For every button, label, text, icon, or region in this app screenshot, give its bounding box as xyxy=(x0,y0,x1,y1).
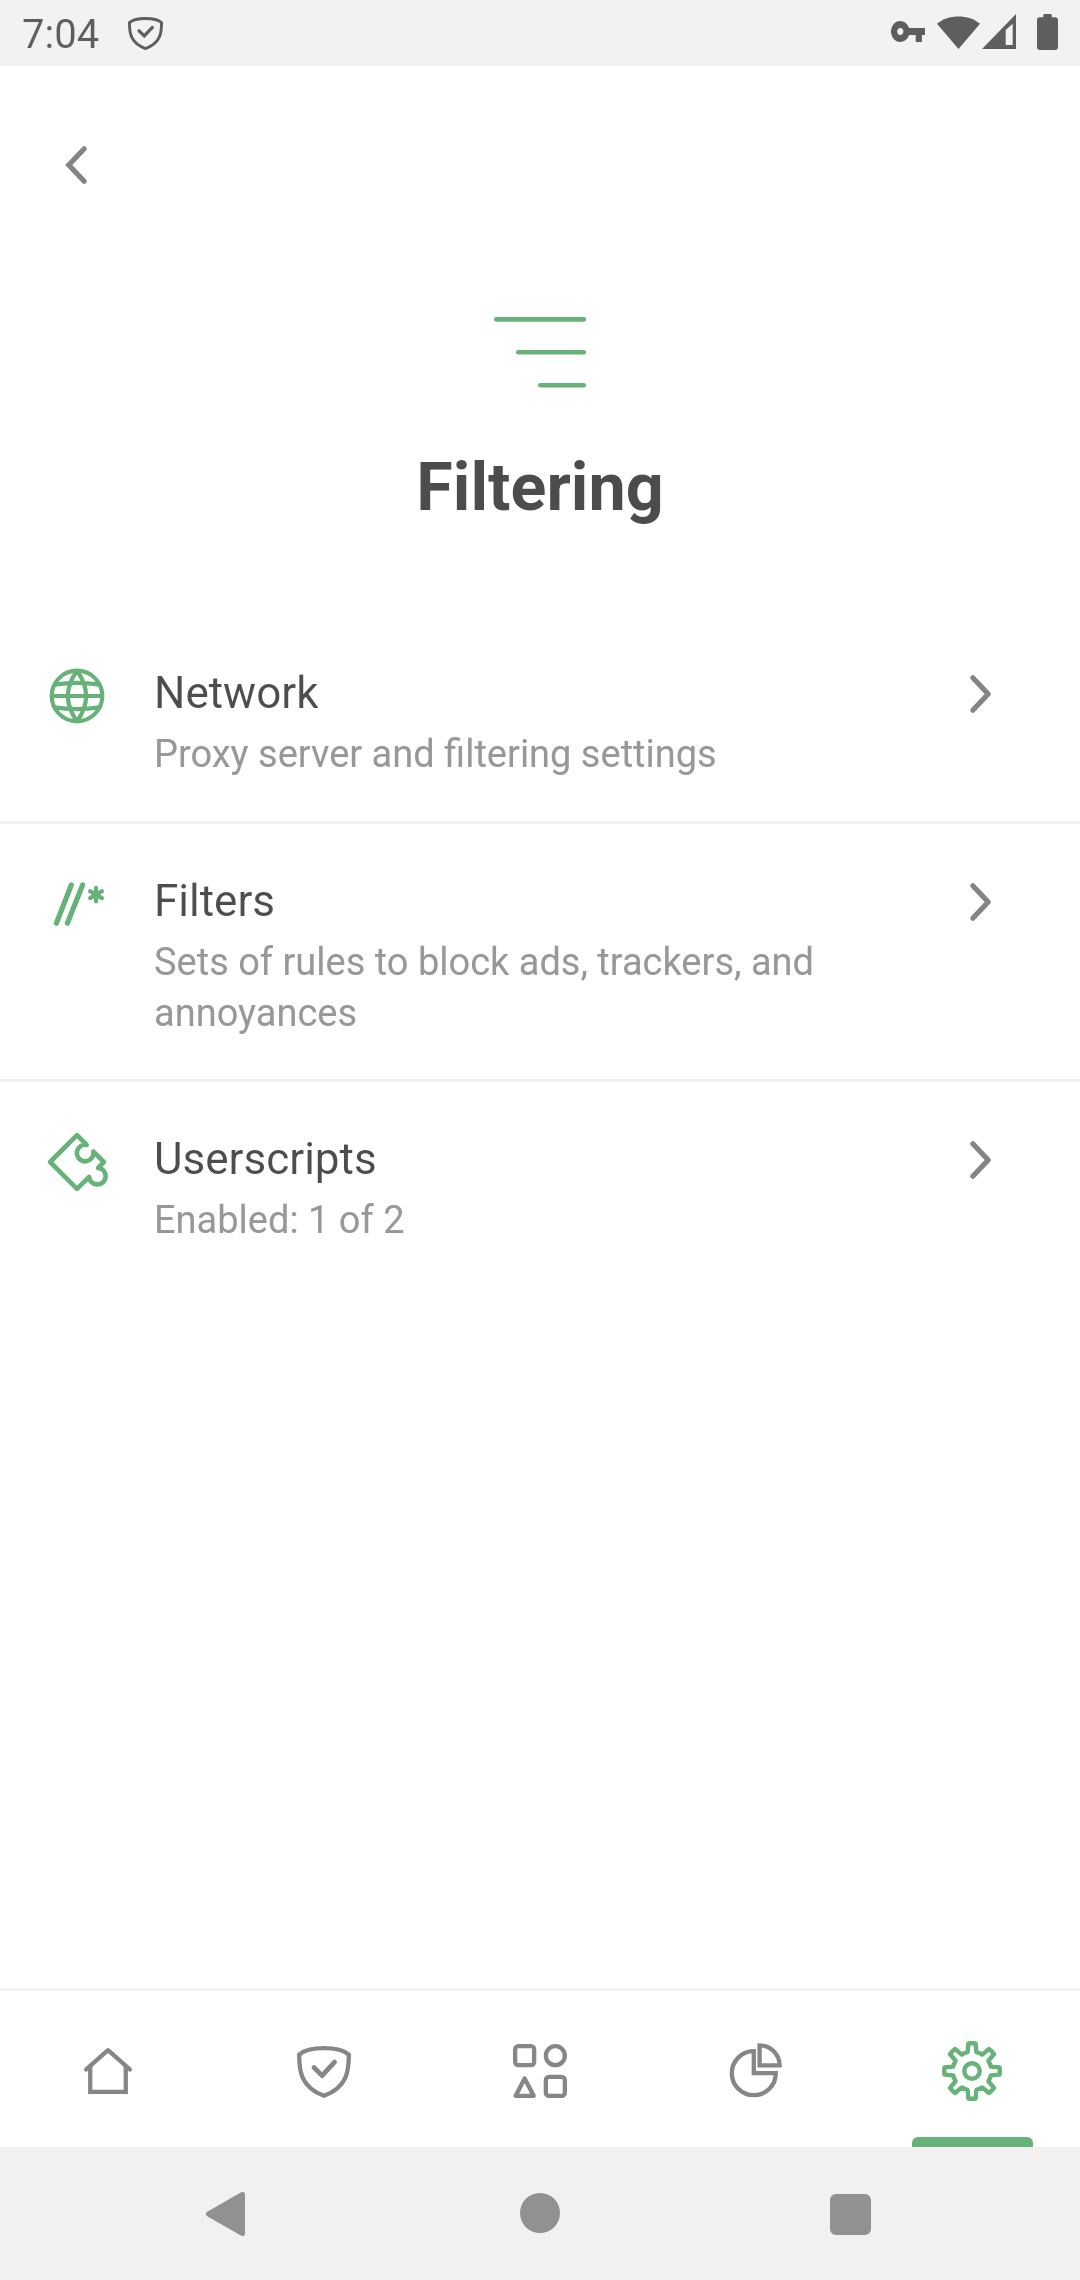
staticText: 7:04 xyxy=(22,11,100,58)
button[interactable]: Userscripts xyxy=(0,1082,1080,1287)
button[interactable]: Back xyxy=(32,121,120,209)
button[interactable]: Network xyxy=(0,616,1080,821)
staticText: Sets of rules to block ads, trackers, an… xyxy=(154,940,956,1035)
button[interactable]: Apps xyxy=(432,1991,648,2148)
button[interactable]: Statistics xyxy=(648,1991,864,2148)
button[interactable]: Filters xyxy=(0,824,1080,1079)
button[interactable]: Settings xyxy=(864,1991,1080,2148)
staticText: Filters xyxy=(154,875,276,927)
button[interactable]: Home xyxy=(0,1991,216,2148)
button[interactable]: Protection xyxy=(216,1991,432,2148)
staticText: Filtering xyxy=(416,448,664,526)
staticText: Proxy server and filtering settings xyxy=(154,732,717,777)
staticText: Network xyxy=(154,667,319,719)
staticText: Enabled: 1 of 2 xyxy=(154,1198,405,1243)
staticText: Userscripts xyxy=(154,1133,377,1185)
